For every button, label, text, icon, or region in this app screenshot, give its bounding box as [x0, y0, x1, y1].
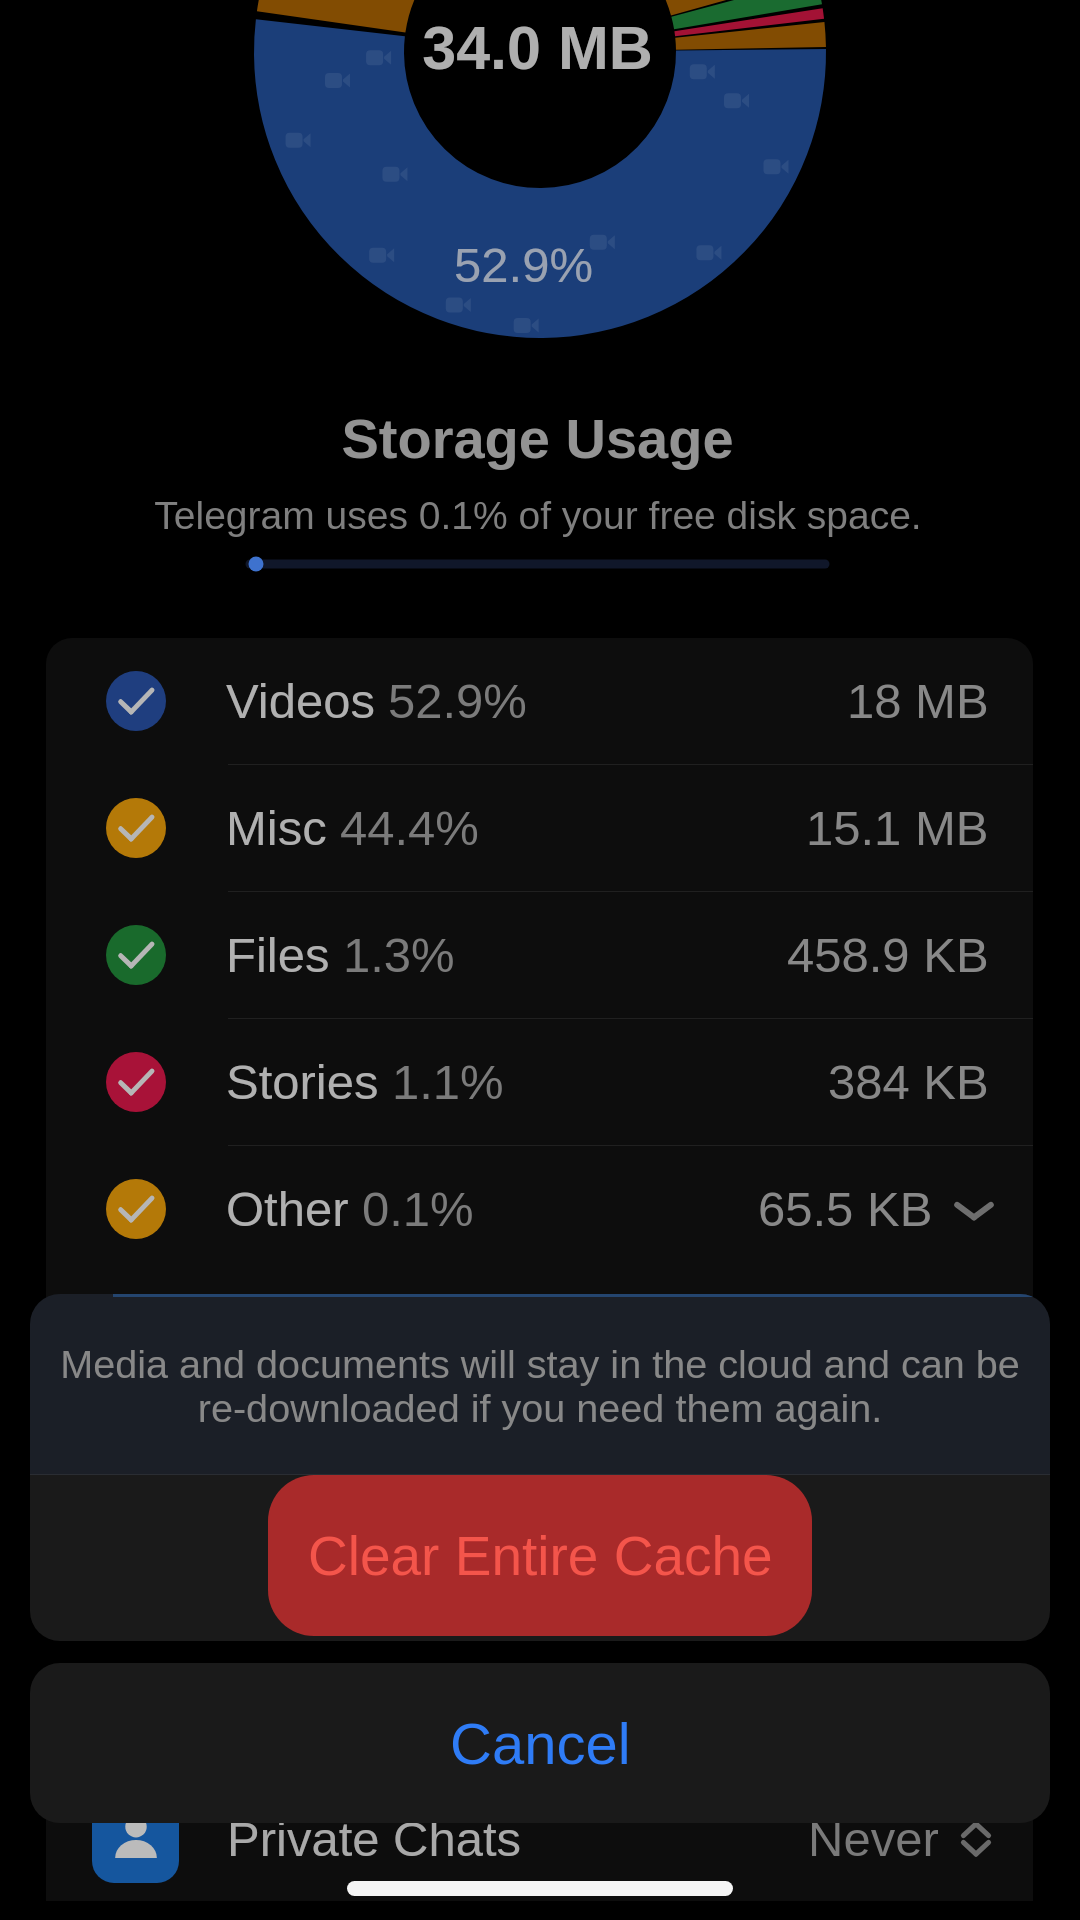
- staticText: Files: [226, 928, 330, 983]
- staticText: 0.1%: [362, 1182, 474, 1237]
- other: Expand: [953, 1188, 995, 1230]
- staticText: 44.4%: [340, 801, 479, 856]
- button[interactable]: Files: [46, 892, 1033, 1018]
- staticText: 34.0 MB: [422, 14, 653, 82]
- button[interactable]: Videos: [46, 638, 1033, 764]
- staticText: Private Chats: [227, 1812, 522, 1867]
- button[interactable]: Cancel: [30, 1663, 1050, 1823]
- staticText: 1.3%: [343, 928, 455, 983]
- staticText: Cancel: [450, 1711, 631, 1776]
- staticText: 52.9%: [454, 238, 593, 293]
- staticText: 384 KB: [828, 1055, 989, 1110]
- staticText: Media and documents will stay in the clo…: [60, 1342, 1020, 1431]
- button[interactable]: Stories: [46, 1019, 1033, 1145]
- other: Change: [955, 1818, 997, 1860]
- button[interactable]: Clear Entire Cache: [268, 1475, 812, 1636]
- button[interactable]: Private Chats: [46, 1777, 1033, 1901]
- staticText: 18 MB: [847, 674, 989, 729]
- staticText: Storage Usage: [341, 407, 734, 470]
- staticText: 1.1%: [392, 1055, 504, 1110]
- staticText: Other: [226, 1182, 349, 1237]
- button[interactable]: Misc: [46, 765, 1033, 891]
- staticText: 52.9%: [388, 674, 527, 729]
- staticText: Stories: [226, 1055, 379, 1110]
- staticText: Videos: [226, 674, 375, 729]
- staticText: Misc: [226, 801, 327, 856]
- staticText: 458.9 KB: [787, 928, 989, 983]
- button[interactable]: Other: [46, 1146, 1033, 1272]
- staticText: 15.1 MB: [806, 801, 989, 856]
- staticText: Telegram uses 0.1% of your free disk spa…: [154, 494, 922, 538]
- staticText: Never: [808, 1812, 939, 1867]
- staticText: Clear Entire Cache: [308, 1525, 773, 1586]
- staticText: 65.5 KB: [758, 1182, 933, 1237]
